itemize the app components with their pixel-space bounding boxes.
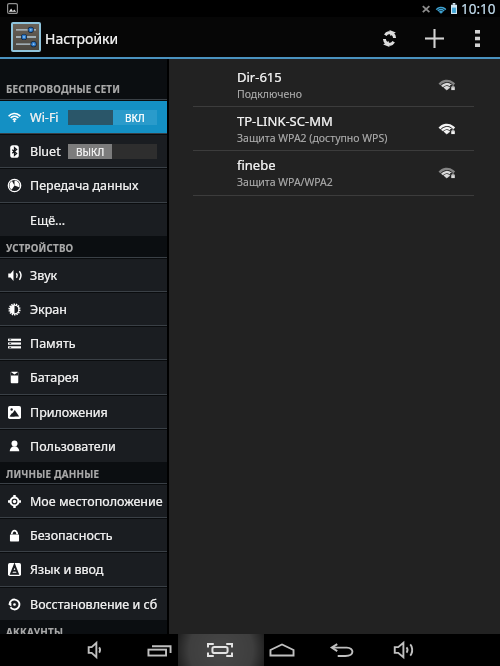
button[interactable]: Мое местоположение [0, 485, 167, 517]
button[interactable]: Off [68, 144, 157, 159]
button[interactable]: More options [462, 17, 492, 59]
staticText: УСТРОЙСТВО [6, 242, 74, 255]
staticText: АККАУНТЫ [6, 626, 64, 639]
button[interactable]: Bluet [0, 135, 167, 167]
staticText: Приложения [30, 404, 108, 421]
staticText: Батарея [30, 369, 79, 386]
button[interactable]: Безопасность [0, 519, 167, 551]
button[interactable]: Передача данных [0, 169, 167, 201]
staticText: ВКЛ [125, 111, 145, 125]
button[interactable]: Пользователи [0, 430, 167, 462]
button[interactable]: Память [0, 327, 167, 359]
staticText: Экран [30, 301, 67, 318]
button[interactable]: Home [252, 634, 312, 666]
staticText: Звук [30, 267, 58, 284]
staticText: Настройки [45, 29, 119, 48]
button[interactable]: Scan for networks [368, 17, 410, 59]
staticText: Память [30, 335, 76, 352]
staticText: Язык и ввод [30, 561, 104, 578]
staticText: Wi-Fi [30, 109, 59, 126]
button[interactable]: Back [313, 634, 373, 666]
button[interactable]: Recent apps [129, 634, 189, 666]
button[interactable]: Приложения [0, 396, 167, 428]
button[interactable]: TP-LINK-SC-MM [169, 106, 500, 150]
staticText: Передача данных [30, 177, 139, 194]
staticText: Мое местоположение [30, 493, 163, 510]
staticText: Пользователи [30, 438, 116, 455]
staticText: Ещё... [30, 212, 66, 229]
staticText: ВЫКЛ [76, 145, 105, 159]
staticText: Защита WPA2 (доступно WPS) [237, 131, 388, 145]
staticText: Подключено [237, 87, 302, 101]
button[interactable]: Ещё... [0, 204, 167, 236]
button[interactable]: Add network [413, 17, 455, 59]
staticText: Восстановление и сб [30, 596, 158, 613]
staticText: TP-LINK-SC-MM [237, 112, 333, 130]
staticText: Защита WPA/WPA2 [237, 175, 333, 189]
staticText: finebe [237, 156, 276, 174]
button[interactable]: Wi-Fi [0, 101, 167, 133]
staticText: ЛИЧНЫЕ ДАННЫЕ [6, 468, 100, 481]
button[interactable]: Батарея [0, 361, 167, 393]
button[interactable]: Volume up [373, 634, 433, 666]
button[interactable]: Screenshot [190, 634, 250, 666]
staticText: Bluet [30, 143, 61, 160]
button[interactable]: Восстановление и сб [0, 588, 167, 620]
button[interactable]: Dir-615 [169, 62, 500, 106]
button[interactable]: Экран [0, 293, 167, 325]
button[interactable]: Settings [11, 22, 41, 52]
staticText: БЕСПРОВОДНЫЕ СЕТИ [6, 83, 121, 96]
staticText: Безопасность [30, 527, 113, 544]
staticText: 10:10 [461, 0, 496, 17]
button[interactable]: finebe [169, 150, 500, 194]
button[interactable]: On [68, 110, 157, 125]
staticText: Dir-615 [237, 68, 282, 86]
button[interactable]: Volume down [66, 634, 126, 666]
button[interactable]: Язык и ввод [0, 553, 167, 585]
button[interactable]: Звук [0, 259, 167, 291]
